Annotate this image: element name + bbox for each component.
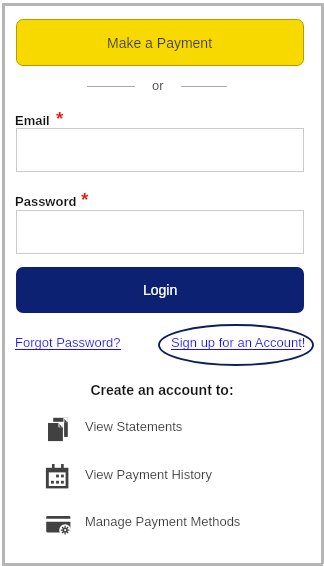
button[interactable]: Login — [16, 267, 304, 313]
staticText: * — [56, 108, 64, 129]
other: View Statements — [47, 416, 69, 442]
button[interactable] — [16, 128, 304, 172]
staticText: Email — [15, 113, 50, 128]
staticText: Forgot Password? — [15, 335, 121, 350]
button[interactable]: Make a Payment — [16, 19, 304, 66]
staticText: or — [152, 78, 164, 93]
button[interactable]: View Statements — [0, 410, 324, 438]
staticText: View Payment History — [85, 467, 212, 482]
staticText: * — [81, 189, 89, 210]
staticText: Sign up for an Account! — [171, 335, 306, 350]
staticText: Create an account to: — [0, 382, 324, 398]
button[interactable]: View Payment History — [0, 458, 324, 486]
button[interactable]: Sign up for an Account! — [171, 335, 306, 350]
button[interactable] — [16, 210, 304, 254]
other: View Payment History — [45, 464, 69, 489]
button[interactable]: Forgot Password? — [15, 335, 121, 350]
staticText: Manage Payment Methods — [85, 514, 241, 529]
staticText: Make a Payment — [107, 35, 213, 51]
other: Manage Payment Methods — [45, 514, 72, 536]
staticText: Login — [143, 282, 178, 298]
staticText: Password — [15, 194, 77, 209]
button[interactable]: Manage Payment Methods — [0, 505, 324, 533]
staticText: View Statements — [85, 419, 183, 434]
